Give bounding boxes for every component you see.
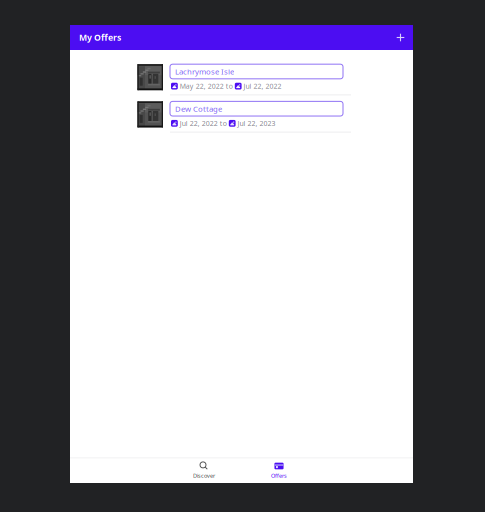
button[interactable]: Dew Cottage [70,101,413,139]
staticText: Discover [193,472,215,479]
staticText: Offers [271,472,287,479]
staticText: Dew Cottage [175,103,222,114]
staticText: Lachrymose Isle [175,66,234,77]
staticText: Jul 22, 2022 to [178,119,229,128]
button[interactable]: Discover [166,462,241,480]
staticText: Jul 22, 2023 [236,119,276,128]
button[interactable]: Add offer [392,29,408,45]
button[interactable]: Offers [241,462,316,480]
button[interactable]: Lachrymose Isle [70,64,413,101]
staticText: My Offers [79,32,121,43]
staticText: Jul 22, 2022 [242,81,282,91]
staticText: May 22, 2022 to [178,81,235,91]
